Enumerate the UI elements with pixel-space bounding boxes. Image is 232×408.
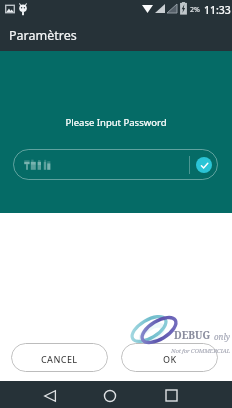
staticText: DEBUG xyxy=(174,328,211,342)
staticText: 11:33 xyxy=(204,3,231,17)
button[interactable]: Confirm password xyxy=(196,157,212,173)
staticText: OK xyxy=(163,353,177,365)
button[interactable]: Back xyxy=(34,381,66,408)
button[interactable]: CANCEL xyxy=(11,343,108,372)
button[interactable]: Recent apps xyxy=(155,381,187,408)
staticText: only xyxy=(214,331,231,342)
button[interactable]: OK xyxy=(121,343,218,372)
staticText: Paramètres xyxy=(9,27,77,44)
staticText: 2% xyxy=(190,5,200,15)
staticText: CANCEL xyxy=(41,353,78,365)
staticText: Not for COMMERCIAL xyxy=(171,346,230,354)
button[interactable]: Home xyxy=(94,381,126,408)
staticText: Please Input Password xyxy=(0,116,232,129)
